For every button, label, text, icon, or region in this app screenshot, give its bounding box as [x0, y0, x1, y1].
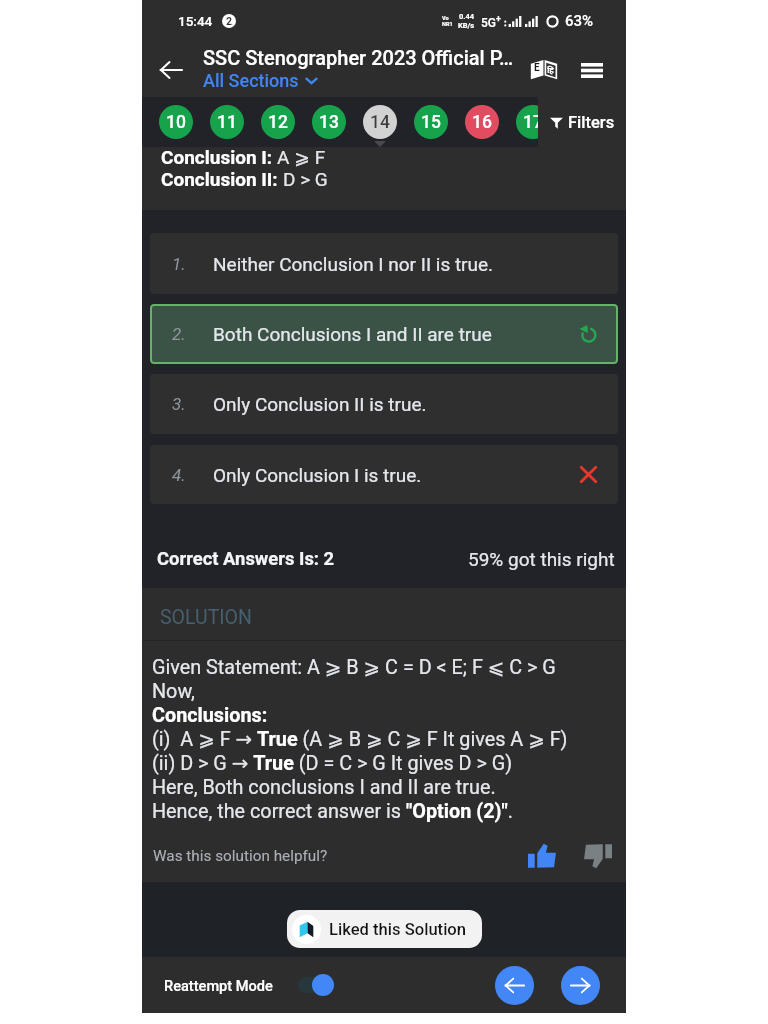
button[interactable]: Filters	[538, 97, 626, 147]
button[interactable]: Menu	[570, 48, 614, 92]
button[interactable]: 2.	[150, 304, 618, 364]
button[interactable]: 18	[567, 105, 601, 139]
staticText: Only Conclusion I is true.	[213, 464, 422, 486]
staticText: 2	[226, 15, 233, 27]
staticText: 16	[472, 112, 492, 133]
staticText: Liked this Solution	[329, 920, 467, 939]
staticText: SSC Stenographer 2023 Official P…	[203, 46, 514, 69]
button[interactable]: Back	[142, 43, 199, 97]
button[interactable]: All Sections	[203, 70, 319, 91]
button[interactable]	[297, 973, 334, 997]
button[interactable]: 17	[516, 105, 550, 139]
staticText: 5G	[481, 16, 496, 30]
staticText: 12	[268, 112, 288, 133]
button[interactable]: 15	[414, 105, 448, 139]
staticText: Given Statement: A ⩾ B ⩾ C = D < E; F ⩽ …	[152, 656, 568, 823]
button[interactable]: 16	[465, 105, 499, 139]
staticText: 15	[421, 112, 441, 133]
button[interactable]: Previous question	[495, 966, 534, 1005]
staticText: Correct Answers Is: 2	[157, 548, 335, 570]
button[interactable]: 11	[210, 105, 244, 139]
staticText: 63%	[565, 12, 594, 30]
button[interactable]: 3.	[150, 374, 618, 434]
staticText: All Sections	[203, 70, 299, 91]
staticText: हि	[547, 64, 554, 75]
button[interactable]: Language	[522, 47, 566, 91]
staticText: 15:44	[178, 13, 213, 29]
staticText: 10	[166, 112, 186, 133]
button[interactable]: 10	[159, 105, 193, 139]
staticText: NR1	[442, 21, 453, 27]
button[interactable]: 14	[363, 105, 397, 139]
button[interactable]: Dislike	[580, 838, 616, 874]
staticText: Reattempt Mode	[164, 977, 273, 994]
staticText: 13	[319, 112, 339, 133]
button[interactable]: 1.	[150, 233, 618, 294]
staticText: Conclusion II:	[161, 168, 283, 190]
staticText: Vo	[442, 15, 449, 21]
staticText: A ⩾ F	[277, 146, 326, 168]
button[interactable]: 4.	[150, 445, 618, 504]
staticText: 1.	[172, 254, 186, 274]
staticText: D > G	[283, 168, 328, 190]
staticText: Only Conclusion II is true.	[213, 393, 427, 415]
button[interactable]: Next question	[561, 966, 600, 1005]
staticText: 4.	[172, 465, 186, 485]
staticText: 59% got this right	[468, 548, 615, 570]
button[interactable]: 12	[261, 105, 295, 139]
staticText: 0.44	[459, 12, 475, 21]
staticText: E	[534, 62, 540, 74]
staticText: 17	[523, 112, 543, 133]
staticText: 3.	[172, 394, 186, 414]
button[interactable]: 13	[312, 105, 346, 139]
staticText: 2.	[172, 324, 186, 344]
button[interactable]: Liked this Solution	[287, 910, 482, 948]
staticText: +	[496, 14, 501, 25]
staticText: KB/s	[458, 21, 475, 30]
staticText: Was this solution helpful?	[153, 847, 328, 865]
staticText: 14	[370, 112, 390, 133]
button[interactable]: Like	[524, 838, 560, 874]
staticText: Conclusion I:	[161, 146, 277, 168]
staticText: Filters	[568, 113, 615, 132]
staticText: Neither Conclusion I nor II is true.	[213, 253, 494, 275]
staticText: Both Conclusions I and II are true	[213, 323, 492, 345]
staticText: 11	[217, 112, 237, 133]
staticText: 18	[574, 112, 594, 133]
staticText: SOLUTION	[160, 606, 252, 629]
